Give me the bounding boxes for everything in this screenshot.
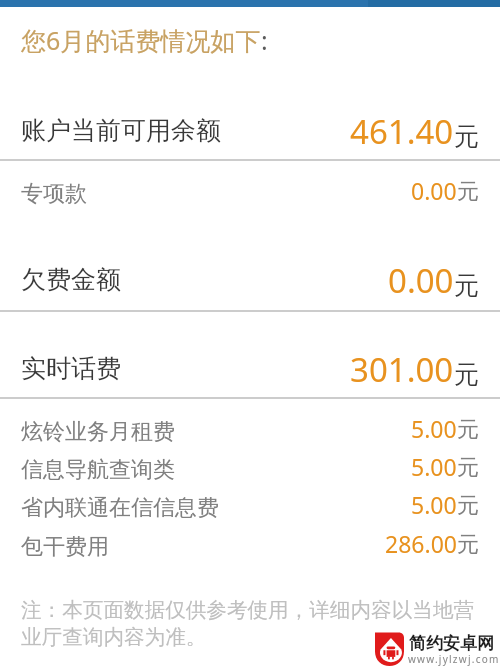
staticText: 欠费金额	[21, 264, 121, 295]
staticText: 0.00	[388, 258, 454, 303]
staticText: 元	[457, 178, 479, 206]
staticText: :	[261, 23, 268, 57]
staticText: 炫铃业务月租费	[21, 418, 175, 446]
button[interactable]: 专项款	[0, 171, 500, 209]
staticText: 账户当前可用余额	[21, 115, 221, 146]
staticText: 简约安卓网	[409, 633, 494, 654]
staticText: 元	[457, 454, 479, 482]
staticText: 元	[454, 359, 479, 390]
staticText: 5.00	[411, 489, 457, 520]
staticText: 301.00	[350, 347, 454, 392]
button[interactable]: 欠费金额	[0, 249, 500, 305]
staticText: 元	[457, 531, 479, 559]
button[interactable]: 省内联通在信信息费	[0, 485, 500, 523]
staticText: 实时话费	[21, 353, 121, 384]
staticText: 您6月的话费情况如下	[21, 23, 261, 57]
staticText: www.jylzwj.com	[408, 652, 500, 666]
staticText: 5.00	[411, 413, 457, 444]
staticText: 元	[454, 270, 479, 301]
staticText: 专项款	[21, 180, 87, 208]
button[interactable]: 实时话费	[0, 338, 500, 394]
staticText: 286.00	[385, 528, 457, 559]
staticText: 0.00	[411, 175, 457, 206]
button[interactable]: 包干费用	[0, 524, 500, 562]
staticText: 注：本页面数据仅供参考使用，详细内容以当地营业厅查询内容为准。	[21, 597, 493, 650]
button[interactable]: 账户当前可用余额	[0, 100, 500, 156]
button[interactable]: 信息导航查询类	[0, 447, 500, 485]
staticText: 元	[457, 492, 479, 520]
staticText: 461.40	[350, 109, 454, 154]
staticText: 5.00	[411, 451, 457, 482]
staticText: 包干费用	[21, 533, 109, 561]
staticText: 元	[454, 121, 479, 152]
button[interactable]: 炫铃业务月租费	[0, 409, 500, 447]
staticText: 信息导航查询类	[21, 456, 175, 484]
staticText: 省内联通在信信息费	[21, 494, 219, 522]
staticText: 元	[457, 416, 479, 444]
